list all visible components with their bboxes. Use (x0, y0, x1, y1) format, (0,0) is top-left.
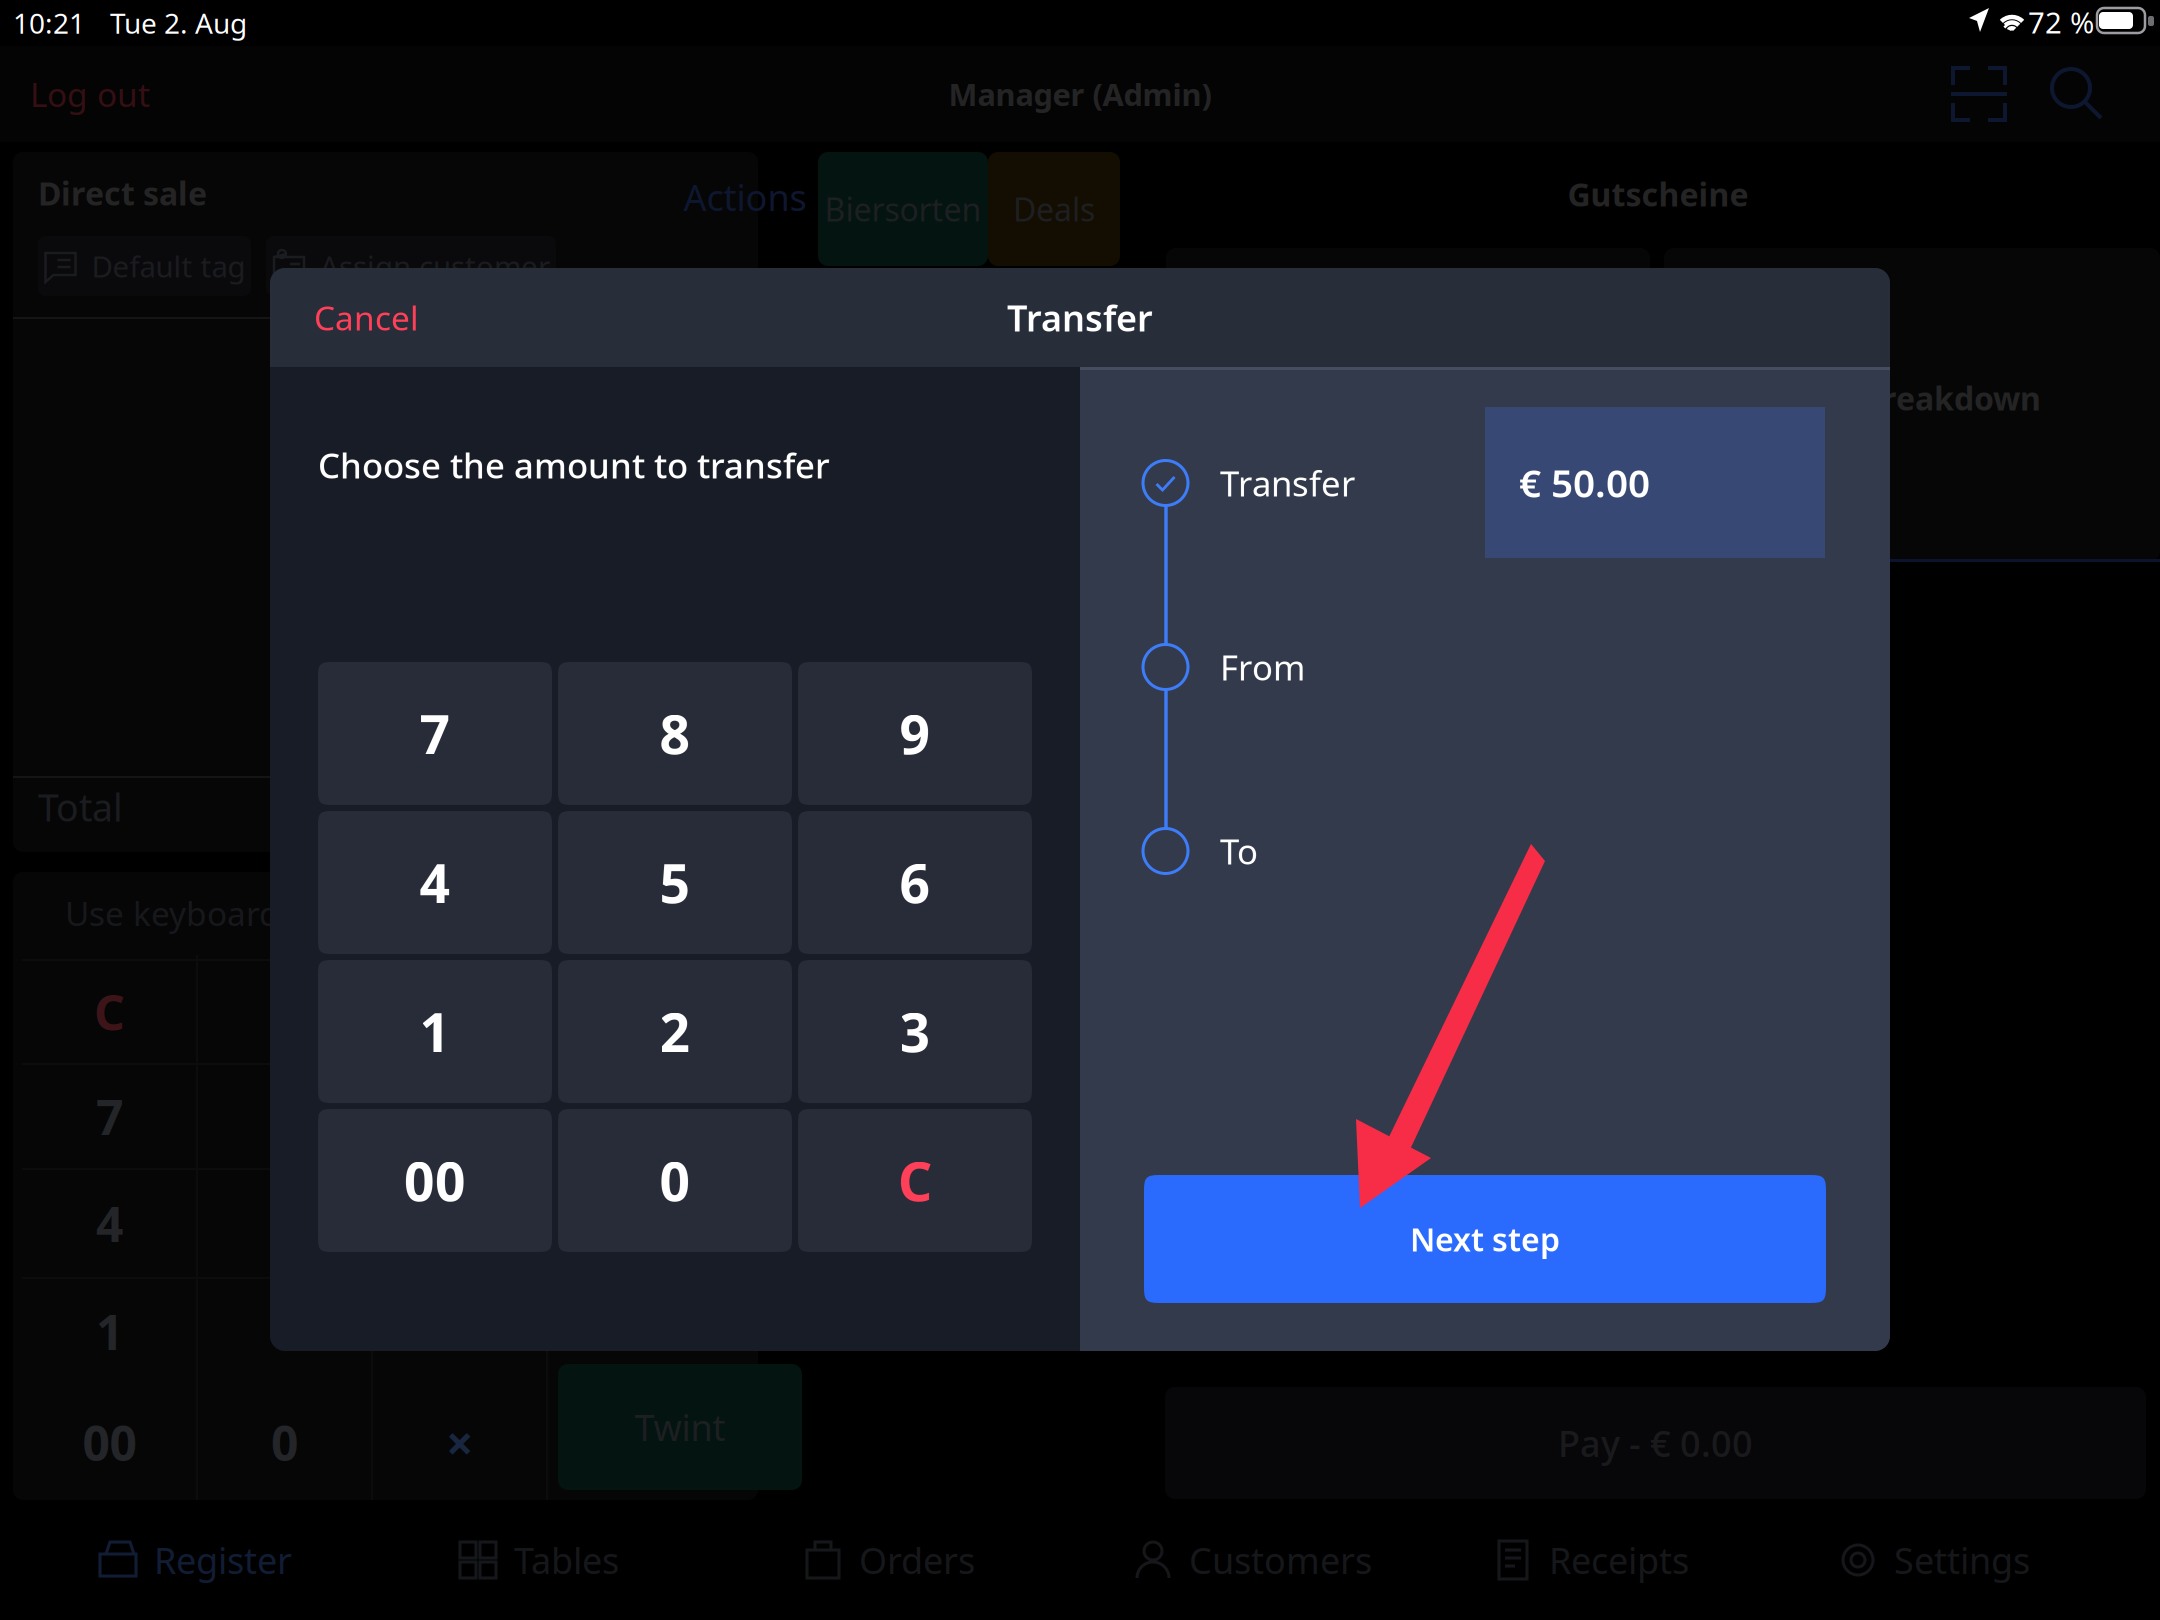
staticText: Receipts (1549, 1536, 1689, 1584)
button[interactable]: C (22, 960, 197, 1064)
button[interactable]: C (798, 1109, 1032, 1252)
staticText: Next step (1410, 1218, 1560, 1260)
staticText: 5 (659, 847, 690, 918)
button[interactable]: Deals (988, 152, 1120, 266)
staticText: C (898, 1145, 932, 1216)
button[interactable]: Customers (1131, 1500, 1431, 1620)
staticText: Use keyboard (65, 891, 280, 935)
button[interactable]: 4 (22, 1169, 197, 1278)
staticText: 4 (96, 1192, 123, 1255)
button[interactable]: 7 (22, 1064, 197, 1169)
staticText: Customers (1189, 1536, 1372, 1584)
button[interactable]: Orders (801, 1500, 1081, 1620)
staticText: 0 (659, 1145, 690, 1216)
button[interactable]: 00 (318, 1109, 552, 1252)
button[interactable]: × (372, 1385, 547, 1500)
button[interactable]: 8 (558, 662, 792, 805)
staticText: 1 (419, 996, 450, 1067)
staticText: Assign customer (320, 246, 550, 285)
staticText: Default tag (91, 246, 245, 285)
staticText: 7 (96, 1085, 123, 1148)
staticText: 72 % (2028, 2, 2094, 41)
button[interactable]: From (1143, 632, 1563, 702)
staticText: Deals (1013, 188, 1095, 230)
staticText: Total (38, 782, 123, 832)
button[interactable]: 0 (558, 1109, 792, 1252)
staticText: 9 (899, 698, 930, 769)
staticText: Pay - € 0.00 (1558, 1419, 1753, 1467)
button[interactable]: Biersorten (818, 152, 988, 266)
button[interactable]: Assign customer (266, 236, 556, 296)
staticText: Register (154, 1536, 292, 1584)
staticText: 1 (96, 1300, 123, 1363)
staticText: Choose the amount to transfer (318, 442, 830, 488)
staticText: Transfer (1007, 294, 1153, 341)
staticText: Actions (683, 173, 806, 221)
staticText: To (1220, 828, 1258, 874)
staticText: € 50.00 (1519, 457, 1650, 508)
button[interactable]: 1 (318, 960, 552, 1103)
staticText: × (446, 1411, 473, 1474)
button[interactable]: Log out (30, 46, 310, 142)
staticText: Cancel (314, 295, 419, 340)
staticText: 0 (271, 1411, 298, 1474)
button[interactable]: Cancel (314, 268, 574, 367)
staticText: 3 (899, 996, 930, 1067)
button[interactable]: Search (2049, 66, 2105, 122)
button[interactable]: 00 (22, 1385, 197, 1500)
button[interactable]: Register (96, 1500, 376, 1620)
staticText: Log out (30, 72, 150, 116)
button[interactable]: 2 (558, 960, 792, 1103)
button[interactable]: Receipts (1491, 1500, 1771, 1620)
button[interactable]: Next step (1144, 1175, 1826, 1303)
staticText: Tue 2. Aug (110, 4, 247, 42)
staticText: 7 (419, 698, 450, 769)
button[interactable]: Twint (558, 1364, 802, 1490)
staticText: Transfer (1220, 460, 1355, 506)
staticText: 4 (419, 847, 450, 918)
staticText: C (94, 980, 125, 1044)
button[interactable]: 5 (558, 811, 792, 954)
staticText: 6 (899, 847, 930, 918)
button[interactable]: 6 (798, 811, 1032, 954)
staticText: Orders (859, 1536, 975, 1584)
button[interactable]: Tables (456, 1500, 736, 1620)
button[interactable]: € 50.00 (1485, 407, 1825, 558)
staticText: Biersorten (824, 188, 981, 230)
button[interactable]: 7 (318, 662, 552, 805)
staticText: Direct sale (38, 172, 207, 214)
button[interactable]: Transfer (1143, 448, 1563, 518)
button[interactable]: 4 (318, 811, 552, 954)
button[interactable]: 9 (798, 662, 1032, 805)
button[interactable]: Settings (1836, 1500, 2116, 1620)
staticText: Gutscheine (1567, 173, 1748, 215)
staticText: 2 (659, 996, 690, 1067)
button[interactable]: 0 (197, 1385, 372, 1500)
staticText: 00 (404, 1145, 466, 1216)
staticText: Settings (1894, 1536, 2030, 1584)
staticText: Tables (514, 1536, 619, 1584)
staticText: Twint (634, 1403, 725, 1451)
button[interactable]: 3 (798, 960, 1032, 1103)
button[interactable]: To (1143, 816, 1563, 886)
button[interactable]: 1 (22, 1278, 197, 1385)
staticText: Manager (Admin) (948, 74, 1211, 114)
staticText: Breakdown (1861, 377, 2041, 419)
staticText: From (1220, 644, 1305, 690)
staticText: 10:21 (13, 4, 85, 42)
staticText: 8 (659, 698, 690, 769)
staticText: 00 (82, 1411, 136, 1474)
button[interactable]: Scan barcode (1950, 65, 2008, 123)
button[interactable]: Default tag (38, 236, 251, 296)
